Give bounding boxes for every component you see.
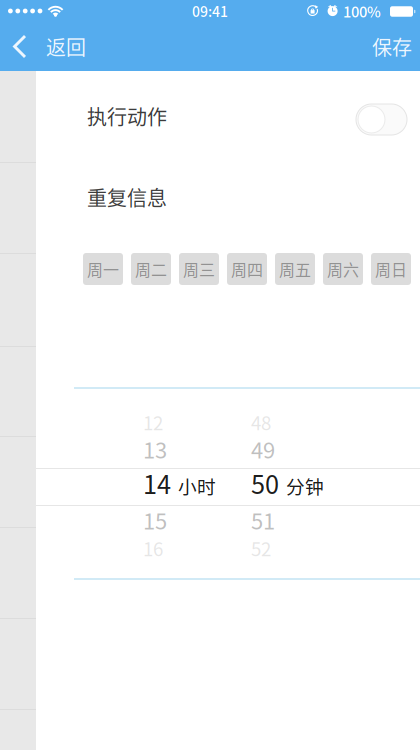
staticText: 13 xyxy=(143,433,167,465)
staticText: 周五 xyxy=(279,257,311,281)
staticText: 48 xyxy=(251,408,271,435)
staticText: 周一 xyxy=(87,257,119,281)
staticText: 周二 xyxy=(135,257,167,281)
staticText: 周四 xyxy=(231,257,263,281)
staticText: 周三 xyxy=(183,257,215,281)
button[interactable]: 执行动作 xyxy=(356,104,407,135)
button[interactable]: 周三 xyxy=(179,253,219,285)
button[interactable]: 保存 xyxy=(330,22,420,71)
staticText: 14 xyxy=(143,465,171,501)
staticText: 周六 xyxy=(327,257,359,281)
staticText: 09:41 xyxy=(192,1,228,21)
staticText: 分钟 xyxy=(286,472,324,499)
staticText: 50 xyxy=(251,465,279,501)
staticText: 15 xyxy=(143,504,167,536)
staticText: 16 xyxy=(143,534,163,561)
staticText: 12 xyxy=(143,408,163,435)
staticText: 52 xyxy=(251,534,271,561)
staticText: 49 xyxy=(251,433,275,465)
button[interactable]: 周一 xyxy=(83,253,123,285)
staticText: 51 xyxy=(251,504,275,536)
button[interactable]: 周五 xyxy=(275,253,315,285)
button[interactable]: 周二 xyxy=(131,253,171,285)
button[interactable]: 周六 xyxy=(323,253,363,285)
staticText: 重复信息 xyxy=(87,182,167,211)
staticText: 100% xyxy=(343,0,381,22)
staticText: 保存 xyxy=(372,32,412,61)
staticText: 执行动作 xyxy=(87,101,167,130)
staticText: 返回 xyxy=(46,32,86,61)
button[interactable]: 返回 xyxy=(0,22,100,71)
staticText: 小时 xyxy=(178,472,216,499)
staticText: 周日 xyxy=(375,257,407,281)
button[interactable]: 周日 xyxy=(371,253,411,285)
button[interactable]: 周四 xyxy=(227,253,267,285)
